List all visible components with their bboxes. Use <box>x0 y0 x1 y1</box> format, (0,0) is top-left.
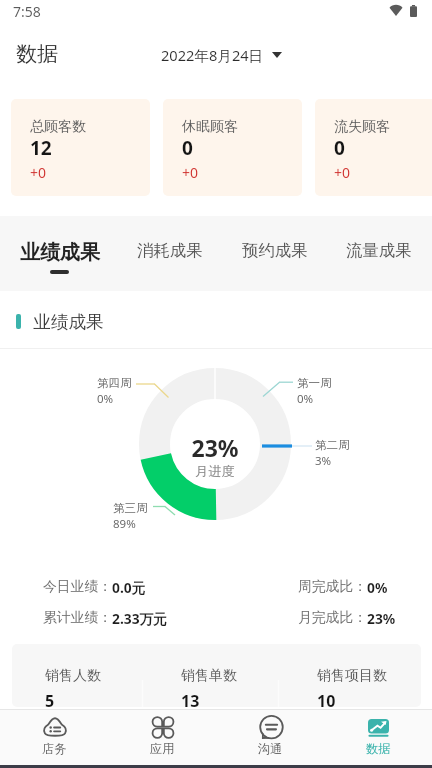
staticText: 周完成比： <box>298 578 367 595</box>
button[interactable]: 数据 <box>324 710 432 765</box>
button[interactable]: 店务 <box>0 710 108 765</box>
staticText: 月完成比： <box>298 609 367 626</box>
staticText: 12 <box>30 135 52 161</box>
button[interactable]: 2022年8月24日 <box>155 41 288 69</box>
button[interactable]: 销售人数 <box>12 644 421 707</box>
staticText: 今日业绩： <box>43 578 112 595</box>
staticText: 5 <box>45 690 55 707</box>
staticText: 销售人数 <box>45 667 101 685</box>
staticText: 销售项目数 <box>317 667 387 685</box>
staticText: 数据 <box>366 741 391 756</box>
staticText: 第一周 0% <box>297 376 332 407</box>
staticText: 0% <box>367 578 388 597</box>
button[interactable]: 消耗成果 <box>120 216 220 291</box>
button[interactable]: 预约成果 <box>225 216 325 291</box>
staticText: 休眠顾客 <box>182 118 238 136</box>
staticText: 累计业绩： <box>43 609 112 626</box>
staticText: 第三周 89% <box>113 501 148 532</box>
staticText: 总顾客数 <box>30 118 86 136</box>
staticText: 0.0元 <box>112 578 146 597</box>
staticText: 23% <box>191 432 239 463</box>
button[interactable]: 休眠顾客 <box>163 99 302 196</box>
button[interactable]: 应用 <box>108 710 216 765</box>
button[interactable]: 流量成果 <box>329 216 429 291</box>
staticText: 10 <box>317 690 336 707</box>
staticText: 店务 <box>42 741 67 756</box>
staticText: 月进度 <box>195 463 235 480</box>
staticText: 业绩成果 <box>33 311 104 333</box>
staticText: 消耗成果 <box>137 240 203 261</box>
button[interactable]: 沟通 <box>216 710 324 765</box>
staticText: 业绩成果 <box>20 240 100 265</box>
staticText: 13 <box>181 690 200 707</box>
staticText: 预约成果 <box>242 240 308 261</box>
staticText: 流失顾客 <box>334 118 390 136</box>
button[interactable]: 流失顾客 <box>315 99 432 196</box>
staticText: 0 <box>182 135 193 161</box>
staticText: +0 <box>334 163 351 182</box>
staticText: 流量成果 <box>346 240 412 261</box>
button[interactable]: 总顾客数 <box>11 99 150 196</box>
staticText: 2.33万元 <box>112 609 168 628</box>
staticText: 销售单数 <box>181 667 237 685</box>
staticText: 7:58 <box>13 2 41 21</box>
staticText: 第二周 3% <box>315 438 350 469</box>
staticText: 0 <box>334 135 345 161</box>
staticText: 沟通 <box>258 741 283 756</box>
staticText: 数据 <box>16 41 58 67</box>
staticText: 23% <box>367 609 396 628</box>
staticText: 第四周 0% <box>97 376 132 407</box>
staticText: 应用 <box>150 741 175 756</box>
staticText: +0 <box>182 163 199 182</box>
staticText: 2022年8月24日 <box>161 45 264 65</box>
button[interactable]: 业绩成果 <box>10 216 110 291</box>
staticText: +0 <box>30 163 47 182</box>
